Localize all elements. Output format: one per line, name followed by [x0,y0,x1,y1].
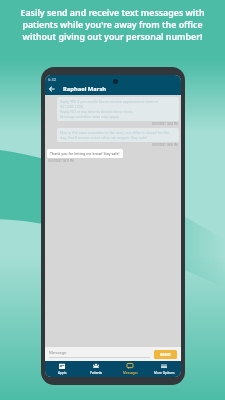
button[interactable]: Messages [113,361,147,377]
staticText: 05/01/2021 18:05 PM [152,143,178,147]
staticText: 05/01/2021 18:11 PM [48,159,74,163]
staticText: 05/01/2021 18:04 PM [152,122,178,126]
staticText: SEND [160,352,171,357]
staticText: Thank you for letting me know! Stay safe… [50,151,120,156]
staticText: Message [49,350,67,356]
staticText: 6:32 [48,77,56,82]
staticText: Due to the severe weather in the area, o… [60,130,176,140]
button[interactable]: SEND [154,350,177,359]
button[interactable]: More Options [147,361,181,377]
staticText: More Options [154,371,175,375]
staticText: Raphael Marsh [63,85,107,93]
staticText: Appts [58,371,67,375]
staticText: Easily send and receive text messages wi… [8,7,217,43]
staticText: Patients [90,371,103,375]
button[interactable]: Appts [45,361,79,377]
button[interactable]: Back [45,83,58,95]
staticText: Reply YES if you would like to receive a… [60,99,176,119]
button[interactable]: Patients [79,361,113,377]
staticText: Messages [123,371,138,375]
